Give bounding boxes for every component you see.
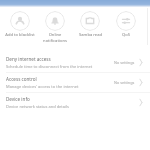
button[interactable]: Deny internet access bbox=[0, 53, 150, 72]
staticText: Manage devices' access to the internet bbox=[6, 84, 79, 89]
staticText: Device network status and details bbox=[6, 104, 70, 109]
staticText: Online notifications bbox=[43, 32, 67, 44]
staticText: Samba read bbox=[79, 32, 102, 38]
button[interactable]: Add to blacklist bbox=[2, 11, 37, 38]
staticText: Schedule time to disconnect from the int… bbox=[6, 64, 93, 69]
button[interactable]: Online notifications bbox=[37, 11, 72, 44]
button[interactable]: Device info bbox=[0, 93, 150, 112]
other: QoS bbox=[116, 11, 136, 31]
button[interactable]: Samba read bbox=[72, 11, 108, 38]
other: Add to blacklist bbox=[10, 11, 30, 31]
other: Online notifications bbox=[45, 11, 65, 31]
staticText: No settings bbox=[114, 60, 135, 65]
button[interactable]: Access control bbox=[0, 73, 150, 92]
staticText: Device info bbox=[6, 96, 30, 102]
other: Samba read bbox=[80, 11, 100, 31]
staticText: Add to blacklist bbox=[5, 32, 35, 38]
staticText: Deny internet access bbox=[6, 56, 51, 62]
staticText: Access control bbox=[6, 76, 37, 82]
staticText: No settings bbox=[114, 80, 135, 85]
staticText: QoS bbox=[122, 32, 130, 38]
button[interactable]: QoS bbox=[108, 11, 144, 38]
